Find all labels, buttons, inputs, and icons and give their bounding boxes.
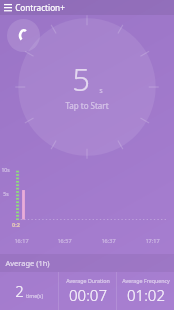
button[interactable]: Average Duration xyxy=(59,272,116,310)
button[interactable]: Tap to start contraction timer xyxy=(0,15,174,162)
staticText: 16:57 xyxy=(57,237,72,244)
staticText: Average Duration xyxy=(66,277,110,284)
staticText: Average Frequency xyxy=(122,277,170,284)
staticText: Contraction+ xyxy=(15,2,65,13)
staticText: 0:2 xyxy=(12,221,20,228)
staticText: s xyxy=(99,86,103,95)
staticText: 5 xyxy=(72,58,90,100)
staticText: 16:37 xyxy=(101,237,116,244)
staticText: Tap to Start xyxy=(65,100,109,111)
staticText: 17:17 xyxy=(145,237,160,244)
staticText: 16:17 xyxy=(14,237,29,244)
staticText: 10s xyxy=(1,167,10,174)
staticText: Average (1h) xyxy=(5,258,50,268)
staticText: 5s xyxy=(3,191,9,198)
staticText: 2 xyxy=(15,281,24,301)
button[interactable]: Call xyxy=(7,19,40,52)
staticText: time(s) xyxy=(26,292,43,299)
button[interactable]: 2 xyxy=(0,272,58,310)
staticText: 00:07 xyxy=(69,285,107,305)
button[interactable]: Open navigation menu xyxy=(2,2,14,14)
button[interactable]: Average Frequency xyxy=(117,272,174,310)
staticText: 01:02 xyxy=(127,285,165,305)
